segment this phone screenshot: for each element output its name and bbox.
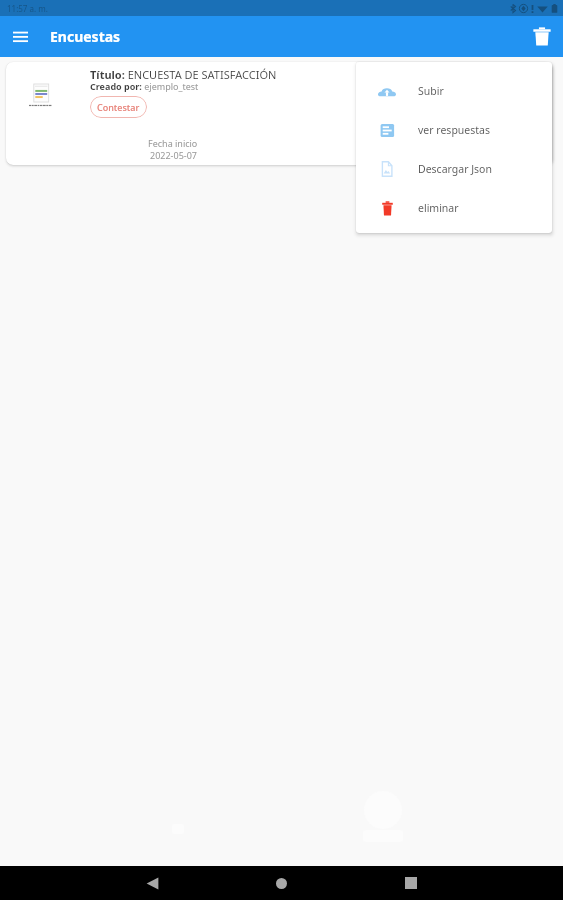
staticText: Título: ENCUESTA DE SATISFACCIÓN (90, 67, 277, 82)
button[interactable]: ver respuestas (356, 110, 552, 149)
staticText: 2022-05-07 (150, 149, 197, 161)
staticText: Creado por: ejemplo_test (90, 80, 199, 92)
button[interactable]: Open navigation drawer (0, 16, 41, 57)
button[interactable]: Home (217, 866, 346, 900)
staticText: 11:57 a. m. (7, 3, 48, 14)
button[interactable]: Recent apps (346, 866, 475, 900)
button[interactable]: eliminar (356, 188, 552, 227)
button[interactable]: Título: ENCUESTA DE SATISFACCIÓN (6, 62, 552, 165)
button[interactable]: Back (88, 866, 217, 900)
staticText: Subir (418, 84, 444, 98)
button[interactable]: Contestar (90, 96, 147, 118)
staticText: Encuestas (50, 27, 121, 46)
staticText: Contestar (97, 101, 140, 113)
staticText: eliminar (418, 201, 459, 215)
button[interactable]: Delete (522, 16, 563, 57)
staticText: ver respuestas (418, 123, 491, 137)
button[interactable]: Descargar Json (356, 149, 552, 188)
button[interactable]: Subir (356, 71, 552, 110)
staticText: Fecha inicio (148, 137, 198, 149)
staticText: Descargar Json (418, 162, 492, 176)
